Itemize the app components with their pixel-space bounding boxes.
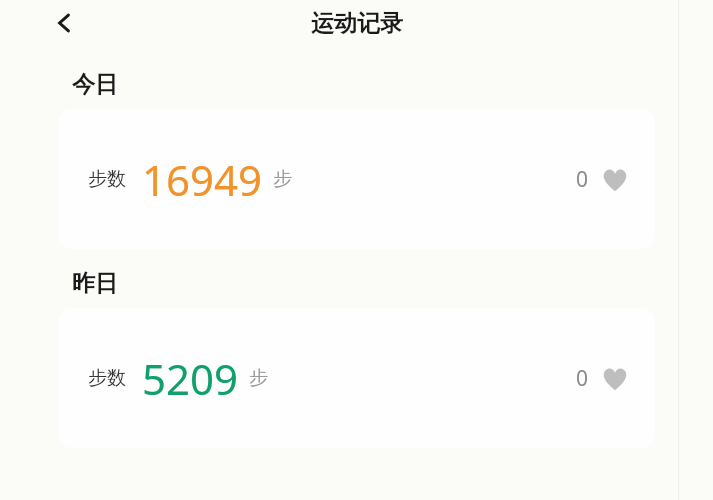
- other: Like: [601, 166, 629, 194]
- button[interactable]: 步数: [58, 308, 655, 448]
- staticText: 0: [576, 364, 589, 393]
- staticText: 步: [249, 366, 268, 390]
- staticText: 步数: [88, 366, 126, 390]
- button[interactable]: 0: [576, 364, 629, 393]
- staticText: 步数: [88, 167, 126, 191]
- staticText: 今日: [72, 70, 118, 99]
- staticText: 昨日: [72, 269, 118, 298]
- other: Like: [601, 365, 629, 393]
- button[interactable]: 步数: [58, 109, 655, 249]
- staticText: 5209: [142, 350, 239, 407]
- staticText: 运动记录: [311, 9, 403, 38]
- button[interactable]: 0: [576, 165, 629, 194]
- staticText: 16949: [142, 151, 263, 208]
- staticText: 0: [576, 165, 589, 194]
- staticText: 步: [273, 167, 292, 191]
- button[interactable]: Back: [44, 3, 84, 43]
